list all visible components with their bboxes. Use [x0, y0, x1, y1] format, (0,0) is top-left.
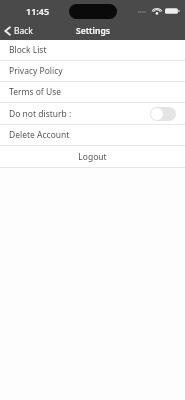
staticText: Terms of Use: [9, 86, 62, 98]
staticText: Logout: [78, 151, 107, 163]
button[interactable]: Logout: [0, 146, 185, 167]
staticText: Settings: [76, 25, 110, 37]
staticText: Delete Account: [9, 129, 70, 141]
staticText: Block List: [9, 44, 47, 56]
button[interactable]: Privacy Policy: [0, 61, 185, 81]
button[interactable]: Do not disturb :: [0, 103, 185, 124]
staticText: 11:45: [26, 5, 50, 17]
button[interactable]: Block List: [0, 40, 185, 60]
button[interactable]: Back: [0, 23, 39, 39]
button[interactable]: Terms of Use: [0, 82, 185, 102]
staticText: Privacy Policy: [9, 65, 63, 77]
button[interactable]: Do not disturb toggle: [150, 107, 176, 121]
staticText: Back: [14, 25, 33, 37]
button[interactable]: Delete Account: [0, 125, 185, 145]
staticText: Do not disturb :: [9, 108, 72, 120]
